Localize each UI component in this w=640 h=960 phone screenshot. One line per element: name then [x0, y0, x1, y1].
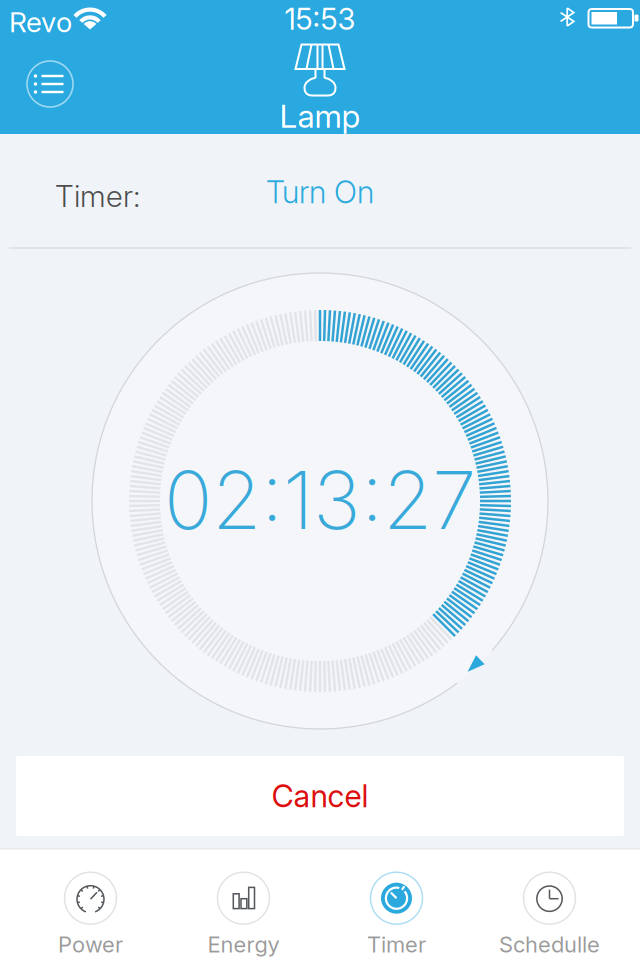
button[interactable]: Cancel: [16, 756, 624, 836]
button[interactable]: Energy: [173, 869, 313, 960]
staticText: Cancel: [271, 777, 368, 814]
staticText: Timer:: [55, 178, 140, 214]
button[interactable]: Timer: [326, 869, 466, 960]
staticText: Power: [58, 931, 123, 958]
button[interactable]: Schedulle: [479, 869, 619, 960]
button[interactable]: Power: [20, 869, 160, 960]
staticText: 02:13:27: [164, 452, 476, 548]
staticText: Schedulle: [499, 931, 600, 958]
staticText: Lamp: [279, 97, 360, 135]
staticText: Revo: [9, 5, 72, 39]
button[interactable]: Turn On: [266, 173, 374, 210]
button[interactable]: Menu: [27, 61, 73, 107]
staticText: Turn On: [266, 173, 374, 210]
staticText: Energy: [207, 931, 279, 958]
staticText: Timer: [367, 931, 426, 958]
staticText: 15:53: [284, 1, 355, 37]
